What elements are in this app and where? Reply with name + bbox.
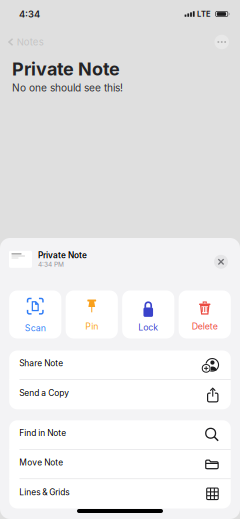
staticText: LTE — [197, 9, 211, 18]
button[interactable]: Find in Note — [9, 420, 231, 450]
button[interactable]: Lock — [122, 290, 174, 338]
staticText: Lock — [138, 322, 158, 332]
staticText: Private Note — [12, 58, 120, 80]
button[interactable]: More options — [214, 31, 240, 53]
staticText: Private Note — [38, 250, 87, 260]
staticText: Pin — [85, 321, 98, 331]
button[interactable]: Share Note — [9, 350, 231, 380]
staticText: Lines & Grids — [19, 487, 69, 497]
staticText: 4:34 — [19, 8, 40, 20]
button[interactable]: Lines & Grids — [9, 479, 231, 508]
button[interactable]: Delete — [179, 290, 231, 338]
button[interactable]: Move Note — [9, 450, 231, 479]
button[interactable]: Close — [214, 250, 240, 272]
staticText: No one should see this! — [12, 82, 123, 94]
staticText: Send a Copy — [19, 388, 69, 398]
staticText: Delete — [192, 321, 218, 331]
staticText: Scan — [25, 323, 46, 333]
button[interactable]: Send a Copy — [9, 380, 231, 409]
staticText: Move Note — [19, 457, 63, 468]
button[interactable]: Notes — [0, 31, 44, 53]
button[interactable]: Scan — [9, 290, 61, 338]
staticText: Find in Note — [19, 428, 66, 438]
staticText: Notes — [17, 36, 44, 48]
staticText: Share Note — [19, 358, 63, 368]
staticText: 4:34 PM — [38, 260, 64, 268]
button[interactable]: Pin — [66, 290, 118, 338]
